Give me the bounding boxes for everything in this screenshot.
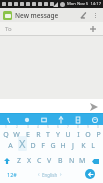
staticText: X: [19, 136, 26, 151]
staticText: N: [69, 156, 75, 166]
staticText: J: [72, 141, 74, 151]
staticText: F: [41, 141, 45, 151]
staticText: 0: [97, 125, 99, 129]
staticText: E: [26, 130, 30, 140]
staticText: V: [47, 156, 52, 166]
staticText: ›: [60, 171, 62, 178]
staticText: 8: [77, 125, 79, 129]
button[interactable]: A: [5, 140, 16, 151]
staticText: 7: [67, 125, 69, 129]
staticText: S: [20, 141, 24, 151]
staticText: 12#: [7, 171, 17, 178]
staticText: T: [46, 130, 50, 140]
staticText: I: [77, 130, 80, 140]
button[interactable]: I: [73, 129, 83, 140]
staticText: 9: [87, 125, 89, 129]
staticText: R: [36, 130, 41, 140]
button[interactable]: K: [78, 140, 88, 151]
button[interactable]: E: [22, 129, 33, 140]
button[interactable]: L: [88, 140, 98, 151]
button[interactable]: C: [34, 155, 44, 167]
button[interactable]: B: [55, 155, 66, 167]
staticText: C: [37, 156, 42, 166]
button[interactable]: Shift: [0, 155, 14, 167]
button[interactable]: More options: [90, 10, 100, 20]
button[interactable]: D: [27, 140, 38, 151]
staticText: Y: [56, 130, 60, 140]
staticText: X: [27, 156, 32, 166]
button[interactable]: Keyboard tool 6: [86, 114, 103, 125]
button[interactable]: T: [43, 129, 53, 140]
staticText: B: [58, 156, 63, 166]
button[interactable]: X: [24, 155, 34, 167]
button[interactable]: O: [83, 129, 93, 140]
button[interactable]: Q: [0, 129, 11, 140]
staticText: H: [60, 141, 66, 151]
button[interactable]: Y: [53, 129, 63, 140]
staticText: Q: [3, 130, 9, 140]
staticText: 6: [57, 125, 59, 129]
staticText: 2: [16, 125, 18, 129]
staticText: To: [5, 25, 12, 33]
staticText: 4: [37, 125, 39, 129]
staticText: K: [81, 141, 86, 151]
staticText: L: [91, 141, 95, 151]
button[interactable]: R: [33, 129, 43, 140]
staticText: U: [65, 130, 71, 140]
button[interactable]: Space: [21, 167, 79, 181]
button[interactable]: Keyboard tool 4: [52, 114, 69, 125]
button[interactable]: P: [93, 129, 103, 140]
staticText: D: [30, 141, 36, 151]
button[interactable]: M: [77, 155, 88, 167]
staticText: 1: [5, 125, 7, 129]
button[interactable]: Backspace: [88, 155, 103, 167]
button[interactable]: Z: [14, 155, 24, 167]
staticText: W: [13, 130, 20, 140]
button[interactable]: Messaging app: [3, 11, 12, 20]
button[interactable]: Add recipient: [88, 24, 98, 34]
staticText: G: [50, 141, 56, 151]
staticText: 3: [27, 125, 29, 129]
button[interactable]: Keyboard tool 5: [69, 114, 86, 125]
button[interactable]: V: [44, 155, 55, 167]
staticText: English: [42, 172, 58, 178]
staticText: P: [96, 130, 101, 140]
staticText: Mon Nov 5 14:17: [67, 1, 102, 7]
button[interactable]: Keyboard tool 2: [18, 114, 35, 125]
staticText: O: [85, 130, 91, 140]
button[interactable]: W: [11, 129, 22, 140]
button[interactable]: G: [48, 140, 58, 151]
button[interactable]: F: [38, 140, 48, 151]
staticText: M: [79, 156, 86, 166]
staticText: ‹: [38, 171, 40, 178]
button[interactable]: H: [58, 140, 68, 151]
staticText: New message: [15, 11, 59, 20]
button[interactable]: Send: [87, 100, 100, 113]
button[interactable]: Enter: [79, 167, 101, 181]
button[interactable]: Keyboard tool 1: [0, 114, 18, 125]
staticText: 5: [47, 125, 49, 129]
button[interactable]: J: [68, 140, 78, 151]
staticText: A: [8, 141, 13, 151]
button[interactable]: U: [63, 129, 73, 140]
staticText: Z: [17, 156, 22, 166]
button[interactable]: 12#: [2, 167, 21, 181]
button[interactable]: N: [66, 155, 77, 167]
button[interactable]: Attach: [77, 9, 90, 22]
button[interactable]: Keyboard tool 3: [35, 114, 52, 125]
button[interactable]: S: [16, 140, 27, 151]
